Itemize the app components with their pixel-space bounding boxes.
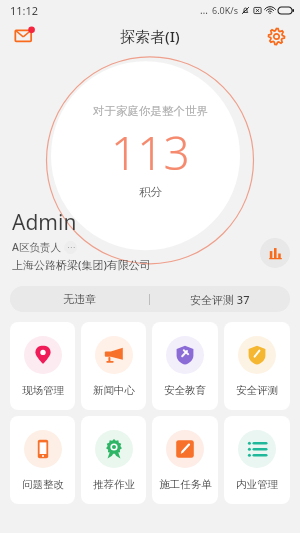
- button[interactable]: Statistics: [260, 238, 290, 268]
- staticText: 现场管理: [22, 384, 64, 397]
- staticText: 6.0K/s: [212, 4, 238, 16]
- button[interactable]: Settings: [260, 20, 292, 52]
- staticText: 推荐作业: [93, 478, 135, 491]
- staticText: 探索者(I): [120, 26, 180, 46]
- button[interactable]: 安全评测 37: [150, 286, 290, 312]
- button[interactable]: 推荐作业: [81, 416, 146, 504]
- staticText: 新闻中心: [93, 384, 135, 397]
- staticText: A区负责人: [12, 240, 61, 254]
- button[interactable]: Messages: [8, 20, 42, 52]
- staticText: 对于家庭你是整个世界: [93, 104, 208, 118]
- staticText: 施工任务单: [159, 478, 212, 491]
- staticText: …: [200, 3, 208, 17]
- staticText: ⋯: [67, 243, 75, 252]
- staticText: 积分: [139, 185, 162, 199]
- staticText: 内业管理: [236, 478, 278, 491]
- button[interactable]: 新闻中心: [81, 322, 146, 410]
- button[interactable]: 安全教育: [152, 322, 218, 410]
- staticText: 安全评测: [236, 384, 278, 397]
- staticText: 无违章: [63, 292, 96, 306]
- staticText: 安全教育: [164, 384, 206, 397]
- button[interactable]: 问题整改: [10, 416, 75, 504]
- button[interactable]: 施工任务单: [152, 416, 218, 504]
- staticText: 113: [111, 121, 190, 184]
- staticText: 安全评测 37: [190, 292, 250, 307]
- button[interactable]: 对于家庭你是整个世界: [93, 104, 208, 199]
- staticText: 问题整改: [22, 478, 64, 491]
- button[interactable]: Admin: [12, 208, 151, 272]
- button[interactable]: 安全评测: [224, 322, 290, 410]
- staticText: Admin: [12, 208, 77, 237]
- button[interactable]: 无违章: [10, 286, 149, 312]
- staticText: 上海公路桥梁(集团)有限公司: [12, 257, 151, 272]
- button[interactable]: 内业管理: [224, 416, 290, 504]
- button[interactable]: 现场管理: [10, 322, 75, 410]
- staticText: 11:12: [10, 3, 39, 18]
